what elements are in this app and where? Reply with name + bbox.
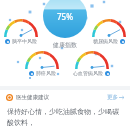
staticText: 医生健康建议 [16,94,49,101]
button[interactable]: 糖尿病风险 [91,18,127,44]
staticText: 糖尿病风险 [93,38,118,44]
button[interactable]: 心血管病风险 [73,50,110,76]
staticText: 肺癌风险 [36,70,56,76]
other: Doctor advice [6,94,13,101]
button[interactable]: 肺癌风险 [24,50,60,76]
button[interactable]: 保持好心情，少吃油腻食物，少喝碳酸饮料， 多次新鲜蔬菜水果。 [0,107,130,130]
staticText: 健康指数 [53,41,77,49]
button[interactable]: 脑卒中风险 [3,18,39,44]
staticText: 脑卒中风险 [12,38,37,44]
button[interactable]: 更多 [107,94,124,101]
staticText: 更多 [107,94,118,101]
staticText: 心血管病风险 [73,70,103,76]
staticText: 75% [57,11,73,22]
button[interactable]: 75% [43,0,87,38]
